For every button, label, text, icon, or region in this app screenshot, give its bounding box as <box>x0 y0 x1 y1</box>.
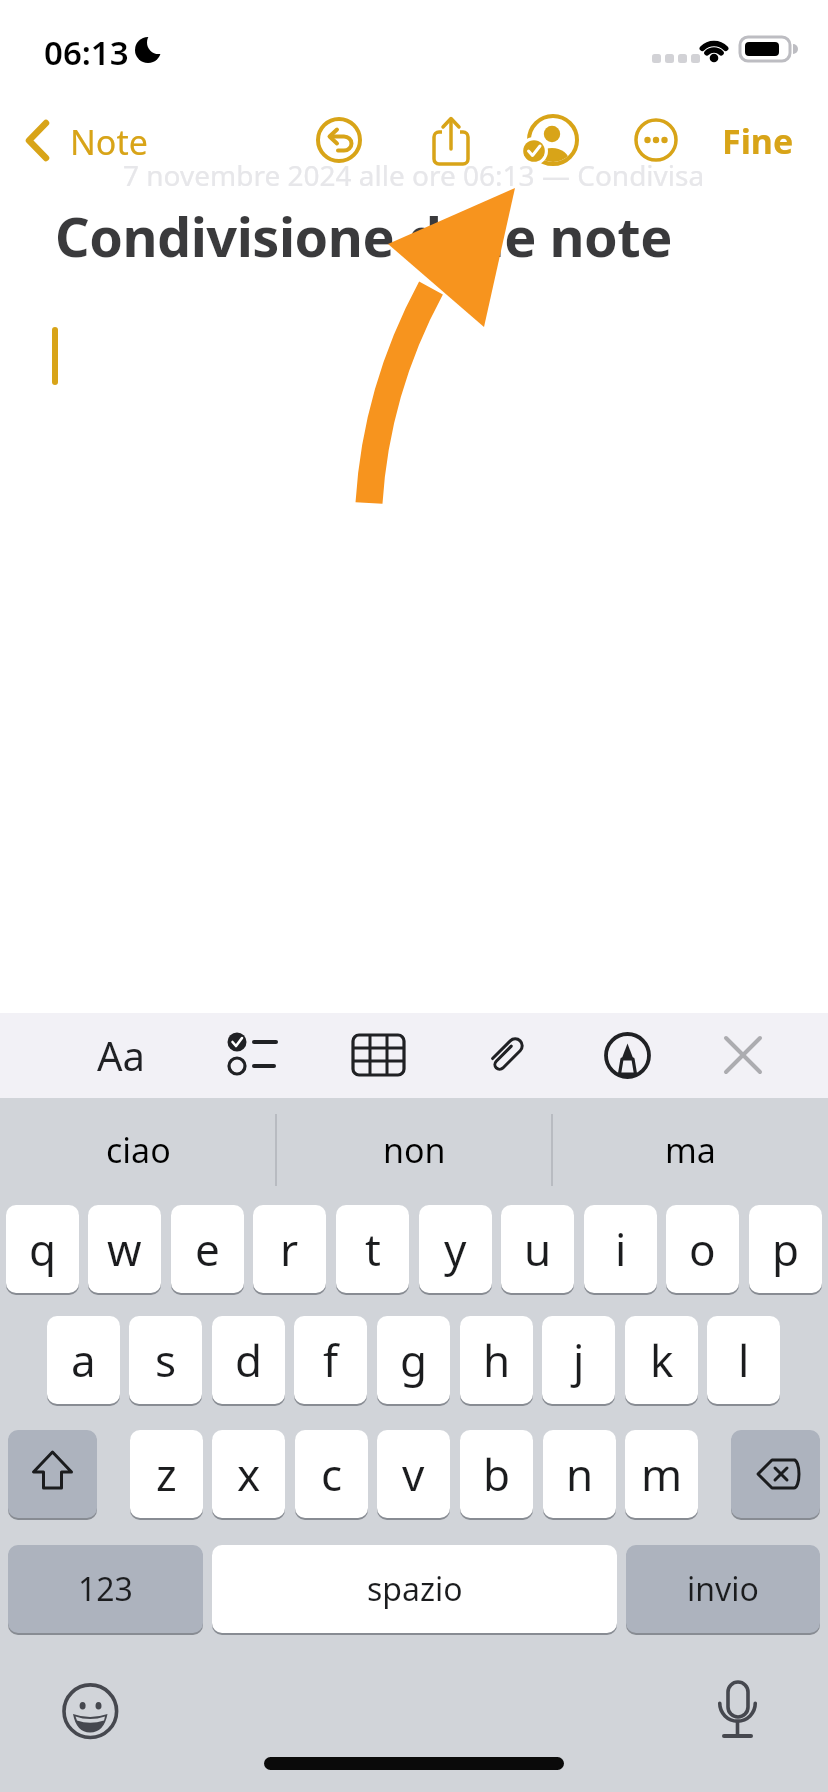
staticText: spazio <box>367 1567 463 1611</box>
button[interactable]: k <box>625 1316 698 1406</box>
button[interactable] <box>8 1430 97 1520</box>
button[interactable]: ciao <box>10 1108 266 1192</box>
button[interactable]: l <box>707 1316 780 1406</box>
staticText: g <box>400 1330 428 1390</box>
button[interactable] <box>350 1031 406 1079</box>
button[interactable] <box>316 117 362 163</box>
button[interactable] <box>428 113 474 167</box>
button[interactable]: d <box>212 1316 285 1406</box>
staticText: Note <box>70 119 148 165</box>
button[interactable]: 123 <box>8 1545 203 1635</box>
button[interactable]: g <box>377 1316 450 1406</box>
button[interactable]: ma <box>562 1108 818 1192</box>
button[interactable]: Note <box>18 112 158 168</box>
button[interactable] <box>600 1028 656 1084</box>
button[interactable]: b <box>460 1430 533 1520</box>
staticText: t <box>365 1219 381 1279</box>
staticText: v <box>402 1444 425 1504</box>
staticText: u <box>524 1219 552 1279</box>
staticText: Aa <box>97 1028 145 1082</box>
staticText: 7 novembre 2024 alle ore 06:13 — Condivi… <box>123 156 705 194</box>
button[interactable]: Aa <box>75 1025 167 1085</box>
staticText: y <box>444 1219 467 1279</box>
button[interactable]: m <box>625 1430 698 1520</box>
button[interactable] <box>60 1683 124 1747</box>
staticText: Fine <box>722 118 794 164</box>
button[interactable] <box>722 1034 764 1076</box>
staticText: x <box>237 1444 261 1504</box>
button[interactable]: e <box>171 1205 244 1295</box>
staticText: p <box>772 1219 800 1279</box>
staticText: o <box>689 1219 716 1279</box>
button[interactable]: f <box>294 1316 367 1406</box>
staticText: m <box>641 1444 683 1504</box>
staticText: ciao <box>106 1127 171 1173</box>
staticText: ma <box>665 1127 716 1173</box>
staticText: non <box>383 1127 446 1173</box>
button[interactable] <box>731 1430 820 1520</box>
button[interactable]: v <box>377 1430 450 1520</box>
staticText: i <box>615 1219 627 1279</box>
button[interactable]: w <box>88 1205 161 1295</box>
button[interactable]: t <box>336 1205 409 1295</box>
button[interactable]: i <box>584 1205 657 1295</box>
staticText: b <box>483 1444 511 1504</box>
staticText: c <box>321 1444 343 1504</box>
staticText: 123 <box>78 1567 133 1611</box>
staticText: w <box>107 1219 142 1279</box>
button[interactable]: s <box>129 1316 202 1406</box>
button[interactable] <box>707 1680 771 1744</box>
staticText: r <box>280 1219 299 1279</box>
button[interactable]: u <box>501 1205 574 1295</box>
button[interactable] <box>218 1023 282 1087</box>
staticText: f <box>323 1330 339 1390</box>
button[interactable] <box>634 118 678 162</box>
button[interactable]: r <box>253 1205 326 1295</box>
button[interactable] <box>520 110 584 174</box>
button[interactable]: o <box>666 1205 739 1295</box>
button[interactable]: x <box>212 1430 285 1520</box>
staticText: h <box>483 1330 511 1390</box>
button[interactable]: z <box>130 1430 203 1520</box>
staticText: d <box>235 1330 263 1390</box>
button[interactable]: spazio <box>212 1545 617 1635</box>
staticText: 06:13 <box>44 30 129 75</box>
button[interactable]: non <box>286 1108 542 1192</box>
staticText: Condivisione delle note <box>55 199 673 273</box>
button[interactable]: j <box>542 1316 615 1406</box>
button[interactable]: c <box>295 1430 368 1520</box>
staticText: n <box>566 1444 594 1504</box>
staticText: invio <box>687 1567 759 1611</box>
button[interactable]: invio <box>626 1545 820 1635</box>
button[interactable]: h <box>460 1316 533 1406</box>
button[interactable]: p <box>749 1205 822 1295</box>
staticText: k <box>650 1330 674 1390</box>
staticText: z <box>156 1444 177 1504</box>
button[interactable]: y <box>419 1205 492 1295</box>
button[interactable]: q <box>6 1205 79 1295</box>
button[interactable]: a <box>47 1316 120 1406</box>
staticText: j <box>573 1330 585 1390</box>
button[interactable]: n <box>543 1430 616 1520</box>
button[interactable]: Fine <box>716 116 800 166</box>
staticText: s <box>155 1330 177 1390</box>
staticText: q <box>29 1219 57 1279</box>
button[interactable] <box>480 1029 532 1081</box>
staticText: a <box>71 1330 96 1390</box>
staticText: l <box>738 1330 750 1390</box>
staticText: e <box>195 1219 220 1279</box>
